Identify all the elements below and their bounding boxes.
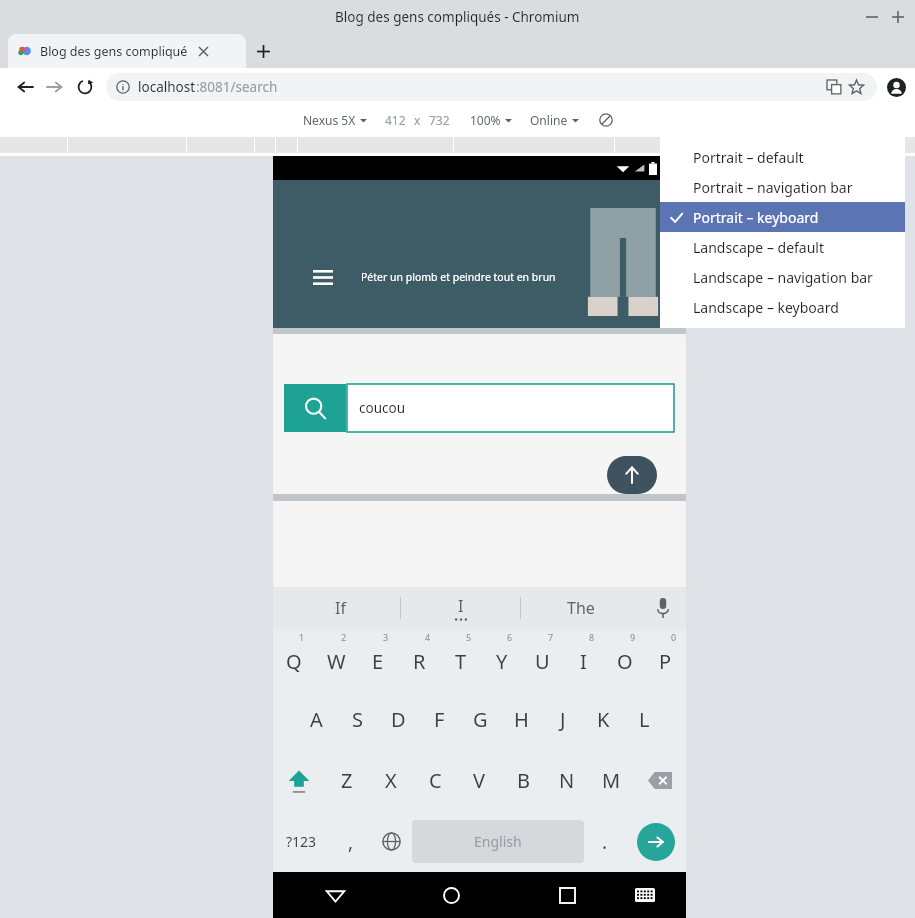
button[interactable]: Menu xyxy=(307,261,339,293)
button[interactable]: Landscape – default xyxy=(660,232,905,262)
button[interactable]: If xyxy=(281,587,400,629)
staticText: G xyxy=(473,706,488,733)
button[interactable]: J xyxy=(542,689,583,750)
button[interactable]: Backspace xyxy=(633,750,686,811)
staticText: Blog des gens compliqué xyxy=(40,43,188,60)
button[interactable]: X xyxy=(369,750,413,811)
button[interactable]: M xyxy=(589,750,633,811)
staticText: English xyxy=(474,832,522,851)
staticText: O xyxy=(617,648,633,675)
button[interactable]: Landscape – keyboard xyxy=(660,292,905,322)
button[interactable]: Search xyxy=(284,384,674,432)
button[interactable]: 1 xyxy=(273,629,315,689)
staticText: Y xyxy=(496,648,508,675)
staticText: ?123 xyxy=(286,832,317,851)
button[interactable]: Portrait – default xyxy=(660,142,905,172)
button[interactable]: Online xyxy=(526,112,583,128)
button[interactable]: , xyxy=(330,811,371,872)
staticText: I xyxy=(458,595,464,617)
button[interactable]: Bookmark xyxy=(845,76,867,98)
staticText: 732 xyxy=(429,112,450,128)
button[interactable]: Back xyxy=(10,72,40,102)
button[interactable]: C xyxy=(413,750,457,811)
button[interactable]: Profile xyxy=(877,68,915,106)
button[interactable]: 3 xyxy=(357,629,399,689)
staticText: F xyxy=(434,706,445,733)
button[interactable]: 8 xyxy=(563,629,604,689)
staticText: If xyxy=(335,597,346,619)
button[interactable]: Close tab xyxy=(194,42,212,60)
staticText: 0 xyxy=(671,631,677,643)
button[interactable]: N xyxy=(545,750,589,811)
staticText: 100% xyxy=(470,112,501,128)
staticText: Portrait – navigation bar xyxy=(693,178,853,197)
staticText: . xyxy=(602,829,608,855)
button[interactable]: F xyxy=(419,689,460,750)
staticText: H xyxy=(514,706,529,733)
button[interactable]: Voice input xyxy=(640,587,686,629)
staticText: Péter un plomb et peindre tout en brun xyxy=(361,270,556,284)
button[interactable]: 0 xyxy=(645,629,686,689)
button[interactable]: K xyxy=(583,689,624,750)
staticText: J xyxy=(560,706,566,733)
button[interactable]: 9 xyxy=(604,629,645,689)
button[interactable]: English xyxy=(412,820,584,863)
staticText: The xyxy=(567,597,595,619)
button[interactable]: 2 xyxy=(315,629,357,689)
button[interactable]: Shift xyxy=(273,750,325,811)
staticText: 5 xyxy=(466,631,472,643)
button[interactable]: New tab xyxy=(246,34,280,68)
button[interactable]: G xyxy=(460,689,501,750)
button[interactable]: Home xyxy=(428,872,474,918)
button[interactable]: Maximize xyxy=(885,4,911,30)
staticText: 7 xyxy=(548,631,554,643)
staticText: U xyxy=(535,648,550,675)
button[interactable]: Translate xyxy=(823,76,845,98)
staticText: B xyxy=(517,767,530,794)
staticText: W xyxy=(327,648,346,675)
button[interactable]: Scroll to top xyxy=(607,456,657,494)
staticText: 9 xyxy=(630,631,636,643)
button[interactable]: Enter xyxy=(637,823,675,861)
staticText: Portrait – default xyxy=(693,148,804,167)
staticText: localhost xyxy=(138,78,196,96)
button[interactable]: Reload xyxy=(70,72,100,102)
staticText: S xyxy=(352,706,363,733)
button[interactable]: Nexus 5X xyxy=(299,112,371,128)
staticText: T xyxy=(455,648,467,675)
button[interactable]: D xyxy=(378,689,419,750)
button[interactable]: 7 xyxy=(522,629,563,689)
button[interactable]: . xyxy=(584,811,625,872)
staticText: 2 xyxy=(341,631,347,643)
button[interactable]: ?123 xyxy=(273,811,330,872)
button[interactable]: A xyxy=(295,689,337,750)
button[interactable]: L xyxy=(624,689,665,750)
staticText: E xyxy=(372,648,384,675)
button[interactable]: 4 xyxy=(399,629,440,689)
button[interactable]: 5 xyxy=(440,629,481,689)
button[interactable]: The xyxy=(521,587,640,629)
button[interactable]: Back xyxy=(312,872,358,918)
button[interactable]: S xyxy=(337,689,378,750)
button[interactable]: Change language xyxy=(371,811,412,872)
staticText: R xyxy=(413,648,426,675)
button[interactable]: Z xyxy=(325,750,369,811)
button[interactable]: Minimize xyxy=(859,4,885,30)
staticText: 6 xyxy=(507,631,513,643)
button[interactable]: Search xyxy=(284,384,346,432)
button[interactable]: Throttling xyxy=(595,109,617,131)
button[interactable]: Hide keyboard xyxy=(622,872,668,918)
button[interactable]: Portrait – navigation bar xyxy=(660,172,905,202)
button[interactable]: Landscape – navigation bar xyxy=(660,262,905,292)
button[interactable]: V xyxy=(457,750,501,811)
button[interactable]: localhost xyxy=(106,73,877,101)
button[interactable]: 6 xyxy=(481,629,522,689)
button[interactable]: 100% xyxy=(466,112,516,128)
staticText: C xyxy=(429,767,442,794)
button[interactable]: B xyxy=(501,750,545,811)
button[interactable]: Forward xyxy=(40,72,70,102)
button[interactable]: Portrait – keyboard xyxy=(660,202,905,232)
button[interactable]: Blog des gens compliqué xyxy=(8,34,246,68)
button[interactable]: Recent apps xyxy=(544,872,590,918)
button[interactable]: H xyxy=(501,689,542,750)
